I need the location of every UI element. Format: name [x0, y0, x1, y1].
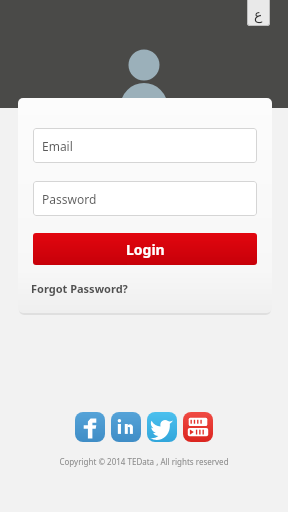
button[interactable]: Password: [33, 181, 257, 216]
button[interactable]: Forgot Password?: [29, 279, 130, 298]
button[interactable]: YouTube: [183, 412, 213, 442]
button[interactable]: Twitter: [147, 412, 177, 442]
staticText: Login: [126, 240, 165, 259]
button[interactable]: Switch language to Arabic: [247, 0, 270, 26]
button[interactable]: Email: [33, 128, 257, 163]
staticText: Copyright © 2014 TEData , All rights res…: [0, 456, 288, 467]
staticText: Forgot Password?: [31, 281, 128, 296]
button[interactable]: Facebook: [75, 412, 105, 442]
button[interactable]: Login: [33, 233, 257, 265]
button[interactable]: LinkedIn: [111, 412, 141, 442]
staticText: ع: [254, 7, 263, 23]
staticText: Password: [42, 191, 97, 207]
staticText: Email: [42, 138, 73, 154]
